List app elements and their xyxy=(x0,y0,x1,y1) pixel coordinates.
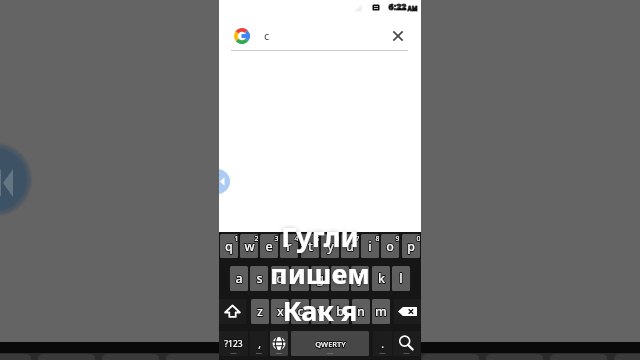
staticText: 1 xyxy=(234,234,238,244)
button[interactable]: g xyxy=(311,266,329,291)
staticText: u xyxy=(346,238,354,255)
staticText: 0 xyxy=(416,234,420,244)
staticText: 6:22 xyxy=(388,1,407,13)
staticText: ?123 xyxy=(224,338,243,350)
button[interactable]: z xyxy=(251,299,269,324)
staticText: a xyxy=(235,270,243,287)
staticText: y xyxy=(327,238,334,255)
staticText: z xyxy=(257,303,263,320)
staticText: q xyxy=(225,238,233,255)
staticText: 9 xyxy=(395,234,399,244)
staticText: 5 xyxy=(315,234,319,244)
staticText: b xyxy=(336,303,344,320)
staticText: QWERTY xyxy=(315,339,346,349)
button[interactable]: Change keyboard xyxy=(270,331,288,356)
staticText: c xyxy=(264,28,270,43)
button[interactable]: . xyxy=(373,331,392,356)
staticText: 4 xyxy=(294,234,298,244)
button[interactable]: e xyxy=(260,234,278,258)
staticText: 3 xyxy=(274,234,278,244)
staticText: 5 xyxy=(315,234,319,244)
staticText: Как я xyxy=(219,292,421,329)
staticText: s xyxy=(256,270,263,287)
staticText: c xyxy=(297,303,304,320)
staticText: f xyxy=(298,270,303,287)
button[interactable]: x xyxy=(271,299,289,324)
staticText: o xyxy=(386,238,394,255)
button[interactable]: o xyxy=(381,234,399,258)
staticText: 4 xyxy=(294,234,298,244)
staticText: j xyxy=(358,270,362,287)
staticText: 2 xyxy=(254,234,258,244)
button[interactable]: r xyxy=(280,234,298,258)
staticText: Гугли xyxy=(219,218,421,255)
staticText: k xyxy=(378,270,385,287)
button[interactable]: v xyxy=(311,299,329,324)
staticText: s xyxy=(256,270,263,287)
staticText: g xyxy=(316,270,324,287)
button[interactable]: c xyxy=(291,299,309,324)
button[interactable]: s xyxy=(250,266,268,291)
staticText: t xyxy=(308,238,313,255)
staticText: e xyxy=(265,238,273,255)
staticText: w xyxy=(244,238,255,255)
button[interactable]: b xyxy=(331,299,349,324)
button[interactable]: , xyxy=(250,331,268,356)
button[interactable]: t xyxy=(301,234,319,258)
button[interactable]: m xyxy=(372,299,390,324)
staticText: i xyxy=(368,238,372,255)
staticText: QWERTY xyxy=(315,339,346,349)
button[interactable]: Search xyxy=(393,331,420,356)
staticText: 9 xyxy=(395,234,399,244)
staticText: 1 xyxy=(234,234,238,244)
button[interactable]: Clear search xyxy=(388,26,408,46)
button[interactable]: l xyxy=(392,266,410,291)
staticText: o xyxy=(386,238,394,255)
staticText: q xyxy=(225,238,233,255)
staticText: пишем xyxy=(219,255,421,292)
staticText: 8 xyxy=(375,234,379,244)
button[interactable]: f xyxy=(291,266,309,291)
button[interactable]: i xyxy=(361,234,379,258)
staticText: j xyxy=(358,270,362,287)
staticText: 7 xyxy=(355,234,359,244)
staticText: k xyxy=(378,270,385,287)
button[interactable]: QWERTY xyxy=(291,331,369,356)
staticText: u xyxy=(346,238,354,255)
button[interactable]: Backspace xyxy=(394,299,421,324)
staticText: v xyxy=(317,303,324,320)
button[interactable]: ?123 xyxy=(219,331,248,356)
button[interactable]: k xyxy=(372,266,390,291)
staticText: . xyxy=(381,337,384,351)
staticText: 6 xyxy=(335,234,339,244)
button[interactable]: j xyxy=(351,266,369,291)
staticText: , xyxy=(258,337,261,351)
button[interactable]: w xyxy=(240,234,258,258)
staticText: 3 xyxy=(274,234,278,244)
button[interactable]: Shift xyxy=(219,299,246,324)
staticText: , xyxy=(258,337,261,351)
button[interactable]: q xyxy=(220,234,238,258)
staticText: i xyxy=(368,238,372,255)
staticText: g xyxy=(316,270,324,287)
button[interactable]: a xyxy=(230,266,248,291)
staticText: t xyxy=(308,238,313,255)
staticText: . xyxy=(381,337,384,351)
staticText: n xyxy=(357,303,365,320)
staticText: p xyxy=(407,238,415,255)
staticText: 2 xyxy=(254,234,258,244)
staticText: e xyxy=(265,238,273,255)
staticText: 6 xyxy=(335,234,339,244)
button[interactable]: n xyxy=(352,299,370,324)
button[interactable]: y xyxy=(321,234,339,258)
button[interactable]: Rewind ten seconds xyxy=(219,169,230,194)
button[interactable]: u xyxy=(341,234,359,258)
staticText: f xyxy=(298,270,303,287)
staticText: 7 xyxy=(355,234,359,244)
staticText: 8 xyxy=(375,234,379,244)
button[interactable]: p xyxy=(402,234,420,258)
staticText: n xyxy=(357,303,365,320)
button[interactable]: h xyxy=(331,266,349,291)
button[interactable]: d xyxy=(271,266,289,291)
staticText: b xyxy=(336,303,344,320)
